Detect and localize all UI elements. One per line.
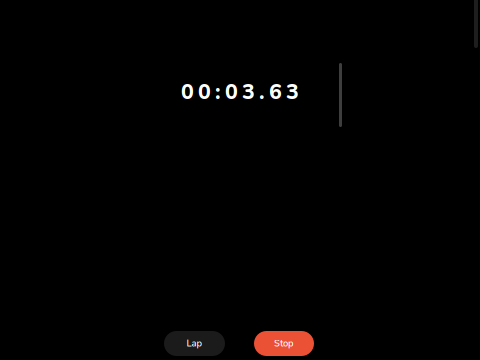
staticText: Lap [186, 337, 202, 350]
button[interactable]: Lap [164, 331, 225, 356]
staticText: Stop [274, 337, 294, 350]
staticText: 00:03.63 [181, 77, 309, 107]
button[interactable]: Stop [254, 331, 314, 356]
